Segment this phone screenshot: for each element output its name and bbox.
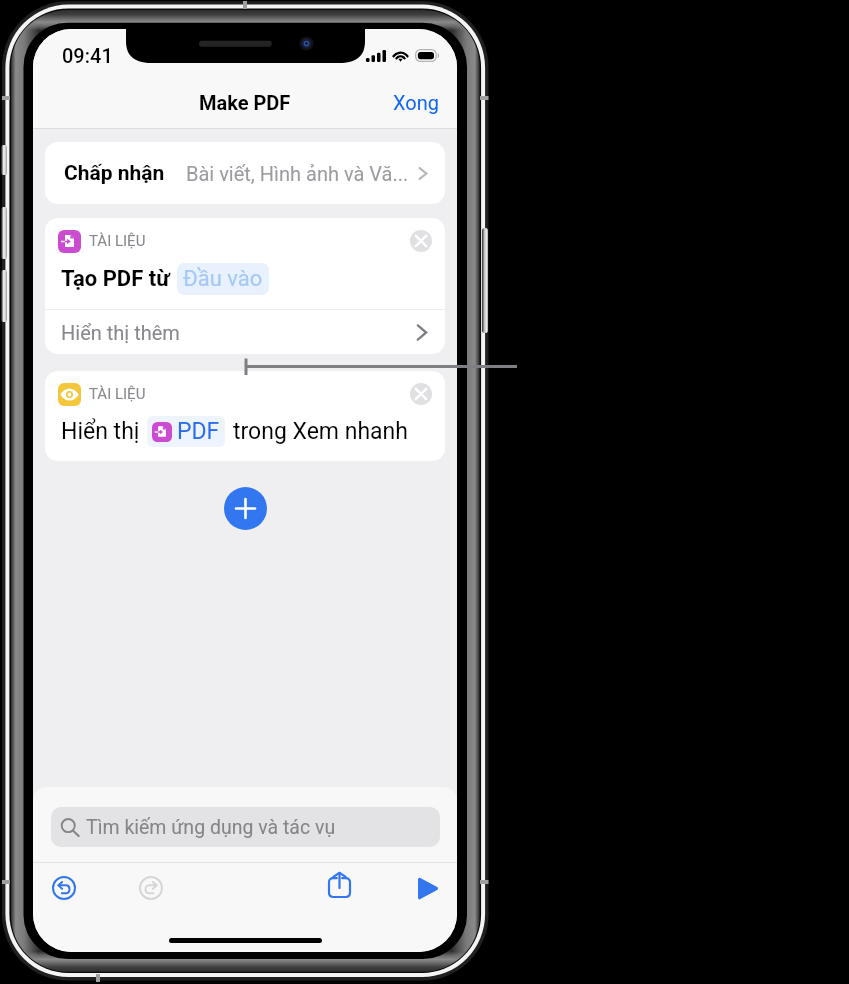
button[interactable]: TÀI LIỆU bbox=[45, 371, 445, 461]
staticText: 09:41 bbox=[62, 44, 113, 67]
staticText: TÀI LIỆU bbox=[89, 385, 146, 403]
button[interactable]: Add action bbox=[224, 487, 267, 530]
button[interactable]: Remove action bbox=[408, 228, 434, 254]
button[interactable]: Share bbox=[317, 862, 361, 906]
staticText: Xong bbox=[393, 91, 440, 114]
staticText: TÀI LIỆU bbox=[89, 232, 146, 250]
staticText: Bài viết, Hình ảnh và Vă... bbox=[186, 162, 409, 185]
button[interactable]: Xong bbox=[376, 83, 457, 122]
button[interactable]: Undo bbox=[42, 866, 86, 910]
staticText: Tạo PDF từ bbox=[61, 266, 170, 292]
button[interactable]: Redo bbox=[129, 866, 173, 910]
button[interactable]: Tìm kiếm ứng dụng và tác vụ bbox=[51, 807, 440, 847]
button[interactable]: Hiển thị thêm bbox=[45, 310, 445, 354]
staticText: Tìm kiếm ứng dụng và tác vụ bbox=[86, 816, 336, 839]
staticText: Chấp nhận bbox=[64, 161, 165, 186]
button[interactable]: Remove action bbox=[408, 381, 434, 407]
staticText: Hiển thị thêm bbox=[61, 321, 180, 344]
button[interactable]: Chấp nhận bbox=[45, 142, 445, 204]
staticText: PDF bbox=[177, 418, 220, 445]
button[interactable]: TÀI LIỆU bbox=[45, 218, 445, 309]
button[interactable]: Run bbox=[406, 866, 450, 910]
staticText: Make PDF bbox=[199, 91, 291, 114]
staticText: trong Xem nhanh bbox=[233, 418, 408, 445]
staticText: Đầu vào bbox=[183, 266, 263, 292]
staticText: Hiển thị bbox=[61, 418, 140, 445]
